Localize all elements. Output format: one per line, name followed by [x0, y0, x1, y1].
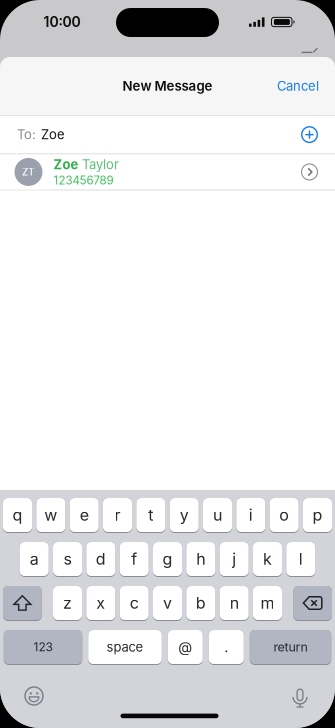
staticText: p — [312, 505, 322, 525]
button[interactable]: Add Contact — [301, 126, 335, 143]
staticText: z — [63, 593, 72, 613]
button[interactable]: a — [20, 542, 49, 577]
button[interactable]: l — [286, 542, 315, 577]
button[interactable]: ZT — [0, 154, 335, 190]
staticText: e — [80, 505, 89, 525]
button[interactable]: Delete — [293, 586, 332, 621]
staticText: Cancel — [277, 78, 319, 94]
button[interactable]: r — [103, 498, 132, 533]
button[interactable]: x — [86, 586, 115, 621]
button[interactable]: . — [209, 630, 244, 665]
button[interactable]: g — [153, 542, 182, 577]
staticText: d — [96, 549, 106, 569]
button[interactable]: w — [36, 498, 65, 533]
button[interactable]: q — [3, 498, 32, 533]
staticText: New Message — [122, 78, 212, 94]
staticText: a — [30, 549, 39, 569]
staticText: ZT — [22, 166, 35, 178]
staticText: w — [44, 505, 57, 525]
staticText: n — [230, 593, 239, 613]
staticText: q — [12, 505, 22, 525]
staticText: To: — [17, 127, 36, 142]
staticText: Zoe — [41, 127, 65, 142]
staticText: h — [196, 549, 205, 569]
button[interactable]: return — [250, 630, 331, 665]
staticText: l — [299, 549, 303, 569]
button[interactable]: h — [186, 542, 215, 577]
staticText: 10:00 — [43, 14, 80, 30]
staticText: r — [114, 505, 120, 525]
staticText: 123 — [33, 640, 52, 654]
button[interactable]: v — [153, 586, 182, 621]
staticText: b — [196, 593, 206, 613]
button[interactable]: y — [170, 498, 199, 533]
button[interactable]: j — [220, 542, 249, 577]
staticText: x — [96, 593, 105, 613]
button[interactable]: Cancel — [277, 78, 335, 94]
staticText: j — [232, 549, 236, 569]
staticText: @ — [178, 638, 192, 656]
staticText: space — [106, 639, 143, 655]
staticText: Zoe — [53, 157, 78, 172]
button[interactable]: Emoji — [24, 686, 44, 706]
button[interactable]: @ — [168, 630, 203, 665]
button[interactable]: p — [303, 498, 332, 533]
button[interactable]: s — [53, 542, 82, 577]
button[interactable]: Shift — [3, 586, 42, 621]
staticText: v — [163, 593, 172, 613]
staticText: . — [224, 638, 228, 656]
staticText: g — [162, 549, 172, 569]
staticText: return — [273, 639, 307, 654]
staticText: m — [260, 593, 274, 613]
button[interactable]: t — [136, 498, 165, 533]
button[interactable]: c — [120, 586, 149, 621]
staticText: Taylor — [82, 157, 119, 172]
staticText: k — [263, 549, 272, 569]
staticText: u — [213, 505, 222, 525]
button[interactable]: n — [220, 586, 249, 621]
button[interactable]: d — [86, 542, 115, 577]
button[interactable]: m — [253, 586, 282, 621]
button[interactable]: o — [270, 498, 299, 533]
button[interactable]: e — [70, 498, 99, 533]
staticText: o — [279, 505, 289, 525]
staticText: s — [63, 549, 71, 569]
button[interactable]: i — [236, 498, 265, 533]
button[interactable]: z — [53, 586, 82, 621]
button[interactable]: space — [88, 630, 162, 665]
staticText: i — [249, 505, 253, 525]
button[interactable]: Dictate — [292, 686, 308, 706]
staticText: c — [130, 593, 139, 613]
staticText: y — [180, 505, 189, 525]
staticText: t — [148, 505, 153, 525]
button[interactable]: k — [253, 542, 282, 577]
staticText: 123456789 — [53, 173, 113, 187]
button[interactable]: 123 — [4, 630, 82, 665]
button[interactable]: b — [186, 586, 215, 621]
button[interactable]: f — [120, 542, 149, 577]
staticText: f — [131, 549, 137, 569]
button[interactable]: u — [203, 498, 232, 533]
